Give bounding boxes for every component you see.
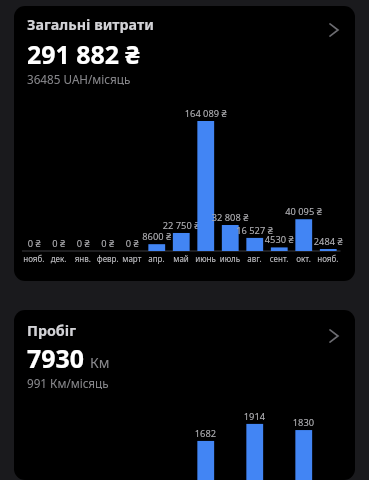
staticText: 291 882 ₴ [27,37,140,71]
staticText: 36485 UAH/місяць [27,71,131,85]
button[interactable]: Детальніше [321,324,345,348]
staticText: Пробіг [27,321,76,340]
staticText: 991 Км/місяць [27,375,109,389]
staticText: Загальні витрати [27,15,154,34]
button[interactable]: Загальні витрати [14,6,355,281]
staticText: 7930 [27,341,84,375]
staticText: Км [90,353,110,372]
button[interactable]: Детальніше [321,18,345,42]
button[interactable]: Пробіг [14,310,355,480]
